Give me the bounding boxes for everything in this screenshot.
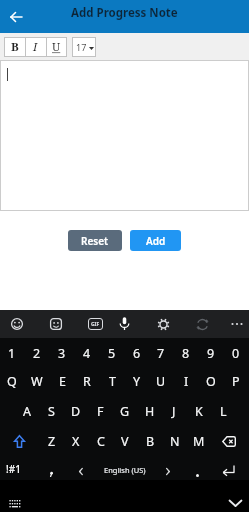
button[interactable]	[224, 495, 246, 511]
staticText: I	[184, 373, 189, 390]
staticText: X	[72, 433, 80, 450]
staticText: 8	[182, 345, 190, 362]
button[interactable]: 6	[125, 342, 149, 364]
button[interactable]: B	[138, 430, 162, 452]
button[interactable]: 2	[25, 342, 49, 364]
button[interactable]: A	[15, 400, 39, 422]
staticText: 5	[108, 345, 116, 362]
staticText: Q	[7, 373, 17, 390]
button[interactable]	[225, 311, 249, 337]
button[interactable]: N	[163, 430, 187, 452]
staticText: GIF	[91, 321, 100, 328]
button[interactable]: 0	[224, 342, 248, 364]
button[interactable]	[5, 311, 29, 337]
button[interactable]: 8	[174, 342, 198, 364]
staticText: 0	[232, 345, 240, 362]
button[interactable]: D	[64, 400, 88, 422]
button[interactable]: R	[75, 370, 99, 392]
staticText: Z	[48, 433, 56, 450]
button[interactable]: 4	[75, 342, 99, 364]
button[interactable]	[70, 460, 92, 482]
staticText: 9	[207, 345, 215, 362]
button[interactable]	[157, 460, 179, 482]
button[interactable]: H	[138, 400, 162, 422]
staticText: U	[156, 373, 166, 390]
button[interactable]: U	[46, 37, 67, 57]
button[interactable]: 17	[72, 37, 96, 57]
button[interactable]: Z	[40, 430, 64, 452]
button[interactable]	[216, 460, 240, 482]
button[interactable]	[40, 460, 62, 482]
staticText: Add Progress Note	[71, 5, 178, 21]
staticText: U	[52, 39, 61, 55]
button[interactable]: W	[25, 370, 49, 392]
button[interactable]	[4, 495, 26, 511]
button[interactable]	[112, 311, 136, 337]
staticText: P	[232, 373, 240, 390]
button[interactable]: L	[211, 400, 235, 422]
button[interactable]: I	[174, 370, 198, 392]
staticText: W	[31, 373, 43, 390]
button[interactable]: F	[88, 400, 112, 422]
button[interactable]: Q	[0, 370, 24, 392]
staticText: !#1	[6, 462, 21, 476]
button[interactable]	[187, 460, 209, 482]
staticText: R	[83, 373, 91, 390]
staticText: Y	[133, 373, 141, 390]
staticText: T	[109, 373, 116, 390]
button[interactable]: 5	[100, 342, 124, 364]
button[interactable]	[7, 430, 31, 452]
staticText: 3	[58, 345, 66, 362]
button[interactable]	[6, 7, 26, 27]
button[interactable]: I	[25, 37, 46, 57]
button[interactable]: B	[4, 37, 25, 57]
button[interactable]: K	[187, 400, 211, 422]
button[interactable]: V	[113, 430, 137, 452]
button[interactable]: S	[39, 400, 63, 422]
staticText: D	[71, 403, 81, 420]
button[interactable]: M	[187, 430, 211, 452]
button[interactable]: Add	[130, 230, 181, 251]
button[interactable]: 3	[50, 342, 74, 364]
staticText: L	[220, 403, 227, 420]
staticText: S	[48, 403, 55, 420]
staticText: A	[23, 403, 31, 420]
button[interactable]: T	[100, 370, 124, 392]
staticText: N	[170, 433, 180, 450]
staticText: J	[172, 403, 176, 420]
button[interactable]: E	[50, 370, 74, 392]
button[interactable]: G	[113, 400, 137, 422]
button[interactable]	[151, 311, 175, 337]
button[interactable]: GIF	[83, 311, 107, 337]
staticText: 6	[133, 345, 141, 362]
staticText: K	[195, 403, 203, 420]
staticText: 2	[33, 345, 41, 362]
button[interactable]: 1	[0, 342, 24, 364]
staticText: Add	[146, 234, 166, 248]
button[interactable]	[44, 311, 68, 337]
staticText: B	[11, 39, 19, 55]
button[interactable]: C	[89, 430, 113, 452]
button[interactable]: J	[162, 400, 186, 422]
button[interactable]: P	[224, 370, 248, 392]
staticText: F	[97, 403, 104, 420]
staticText: 4	[83, 345, 91, 362]
button[interactable]: 7	[149, 342, 173, 364]
button[interactable]	[190, 311, 214, 337]
button[interactable]: X	[64, 430, 88, 452]
button[interactable]: U	[149, 370, 173, 392]
button[interactable]: English (US)	[90, 459, 160, 481]
button[interactable]: 9	[199, 342, 223, 364]
button[interactable]: O	[199, 370, 223, 392]
staticText: C	[97, 433, 105, 450]
staticText: M	[193, 433, 205, 450]
button[interactable]	[0, 60, 249, 211]
staticText: H	[145, 403, 155, 420]
button[interactable]: Reset	[68, 230, 122, 251]
staticText: O	[206, 373, 216, 390]
staticText: V	[121, 433, 129, 450]
button[interactable]	[216, 430, 242, 452]
staticText: I	[33, 39, 38, 55]
button[interactable]: !#1	[0, 458, 26, 480]
button[interactable]: Y	[125, 370, 149, 392]
